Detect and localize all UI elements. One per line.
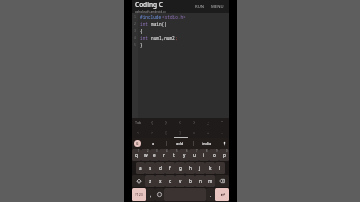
- button[interactable]: o: [209, 149, 219, 161]
- staticText: int: [140, 35, 151, 41]
- staticText: b: [189, 178, 192, 184]
- staticText: h: [189, 165, 192, 171]
- button[interactable]: ]: [173, 127, 187, 137]
- button[interactable]: j: [195, 162, 205, 174]
- button[interactable]: d: [155, 162, 165, 174]
- button[interactable]: >: [145, 127, 159, 137]
- button[interactable]: w: [141, 149, 150, 161]
- button[interactable]: u: [189, 149, 199, 161]
- button[interactable]: Backspace: [215, 175, 229, 187]
- staticText: 4: [134, 36, 136, 40]
- button[interactable]: add: [167, 138, 193, 149]
- button[interactable]: <: [132, 127, 145, 137]
- button[interactable]: g: [175, 162, 185, 174]
- button[interactable]: Voice typing settings: [134, 140, 141, 147]
- staticText: <: [137, 130, 140, 135]
- button[interactable]: MENU: [209, 2, 226, 12]
- staticText: w: [144, 152, 148, 158]
- staticText: [: [165, 130, 168, 135]
- staticText: =: [193, 130, 196, 135]
- button[interactable]: k: [205, 162, 215, 174]
- staticText: d: [159, 165, 162, 171]
- button[interactable]: }: [159, 118, 173, 127]
- staticText: g: [179, 165, 182, 171]
- staticText: 1: [138, 149, 140, 153]
- staticText: 2: [147, 149, 149, 153]
- button[interactable]: m: [205, 175, 215, 187]
- staticText: s: [149, 165, 152, 171]
- button[interactable]: ": [215, 118, 229, 127]
- staticText: z: [149, 178, 152, 184]
- staticText: ,: [150, 192, 152, 198]
- staticText: 5: [134, 43, 136, 47]
- button[interactable]: RUN: [193, 2, 206, 12]
- button[interactable]: +: [201, 127, 215, 137]
- button[interactable]: p: [219, 149, 229, 161]
- button[interactable]: {: [145, 118, 159, 127]
- button[interactable]: s: [145, 162, 155, 174]
- button[interactable]: y: [179, 149, 189, 161]
- button[interactable]: ): [187, 118, 201, 127]
- button[interactable]: l: [215, 162, 225, 174]
- button[interactable]: t: [169, 149, 179, 161]
- button[interactable]: ?123: [132, 188, 146, 201]
- staticText: .: [210, 192, 212, 198]
- button[interactable]: a: [141, 138, 166, 149]
- button[interactable]: h: [185, 162, 195, 174]
- staticText: add: [176, 141, 184, 146]
- button[interactable]: e: [150, 149, 159, 161]
- staticText: ashoksoft.android.cc: [135, 10, 167, 13]
- button[interactable]: india: [194, 138, 220, 149]
- button[interactable]: 1: [132, 13, 229, 118]
- staticText: }: [140, 42, 143, 48]
- staticText: u: [193, 152, 196, 158]
- button[interactable]: f: [165, 162, 175, 174]
- button[interactable]: Emoji: [155, 188, 164, 201]
- staticText: 9: [216, 149, 218, 153]
- button[interactable]: [: [159, 127, 173, 137]
- staticText: 2: [134, 22, 136, 26]
- button[interactable]: c: [165, 175, 175, 187]
- button[interactable]: =: [187, 127, 201, 137]
- staticText: m: [208, 178, 213, 184]
- button[interactable]: Enter: [215, 188, 229, 201]
- staticText: 3: [134, 29, 136, 33]
- staticText: t: [173, 152, 175, 158]
- button[interactable]: Shift: [132, 175, 145, 187]
- button[interactable]: a: [136, 162, 145, 174]
- button[interactable]: i: [199, 149, 209, 161]
- staticText: e: [153, 152, 156, 158]
- button[interactable]: b: [185, 175, 195, 187]
- staticText: y: [183, 152, 186, 158]
- staticText: p: [223, 152, 226, 158]
- button[interactable]: v: [175, 175, 185, 187]
- button[interactable]: ;: [201, 118, 215, 127]
- staticText: Tab: [135, 120, 142, 125]
- button[interactable]: Tab: [132, 118, 145, 127]
- staticText: (: [179, 120, 182, 125]
- button[interactable]: n: [195, 175, 205, 187]
- staticText: 6: [186, 149, 188, 153]
- staticText: -: [221, 130, 224, 135]
- staticText: ": [221, 120, 224, 125]
- staticText: f: [169, 165, 171, 171]
- staticText: c: [169, 178, 172, 184]
- button[interactable]: ,: [146, 188, 155, 201]
- button[interactable]: z: [145, 175, 155, 187]
- button[interactable]: (: [173, 118, 187, 127]
- staticText: a: [152, 141, 155, 146]
- staticText: n: [199, 178, 202, 184]
- staticText: G: [136, 141, 139, 146]
- staticText: >: [151, 130, 154, 135]
- staticText: a: [139, 165, 142, 171]
- button[interactable]: .: [206, 188, 215, 201]
- button[interactable]: r: [159, 149, 169, 161]
- button[interactable]: x: [155, 175, 165, 187]
- button[interactable]: q: [132, 149, 141, 161]
- staticText: i: [203, 152, 205, 158]
- staticText: <stdio.h>: [162, 14, 186, 20]
- staticText: num1,num2: [151, 35, 175, 41]
- button[interactable]: Voice input: [220, 138, 229, 149]
